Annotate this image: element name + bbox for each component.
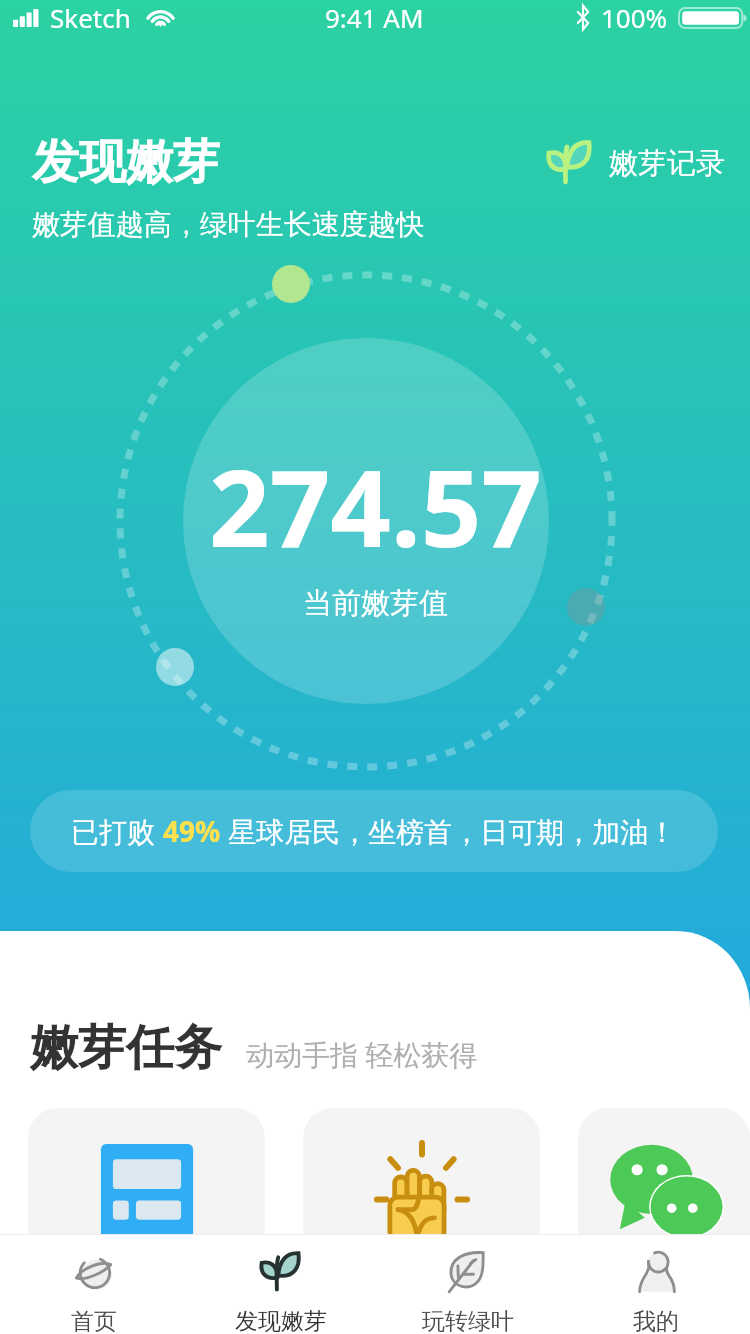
button[interactable]: 发现嫩芽: [187, 1235, 374, 1334]
button[interactable]: 我的: [562, 1235, 750, 1334]
staticText: 嫩芽记录: [609, 145, 725, 182]
staticText: 274.57: [209, 434, 542, 578]
staticText: 发现嫩芽: [32, 133, 220, 192]
staticText: 发现嫩芽: [235, 1307, 327, 1334]
staticText: Sketch: [50, 0, 131, 35]
staticText: 100%: [601, 0, 668, 35]
button[interactable]: 首页: [0, 1235, 187, 1334]
staticText: 我的: [633, 1307, 679, 1334]
button[interactable]: [28, 1108, 265, 1308]
staticText: 已打败: [71, 812, 163, 850]
button[interactable]: 嫩芽记录: [545, 138, 750, 188]
button[interactable]: [303, 1108, 540, 1308]
staticText: 49%: [163, 812, 221, 850]
button[interactable]: [578, 1108, 750, 1308]
staticText: 嫩芽值越高，绿叶生长速度越快: [32, 207, 424, 242]
staticText: 星球居民，坐榜首，日可期，加油！: [221, 812, 677, 850]
staticText: 玩转绿叶: [422, 1307, 514, 1334]
staticText: 嫩芽任务: [30, 1018, 222, 1078]
staticText: 9:41 AM: [325, 0, 424, 35]
staticText: 当前嫩芽值: [303, 585, 448, 622]
button[interactable]: 玩转绿叶: [374, 1235, 562, 1334]
staticText: 动动手指 轻松获得: [246, 1035, 478, 1073]
staticText: 首页: [71, 1307, 117, 1334]
button[interactable]: 已打败: [30, 790, 718, 872]
